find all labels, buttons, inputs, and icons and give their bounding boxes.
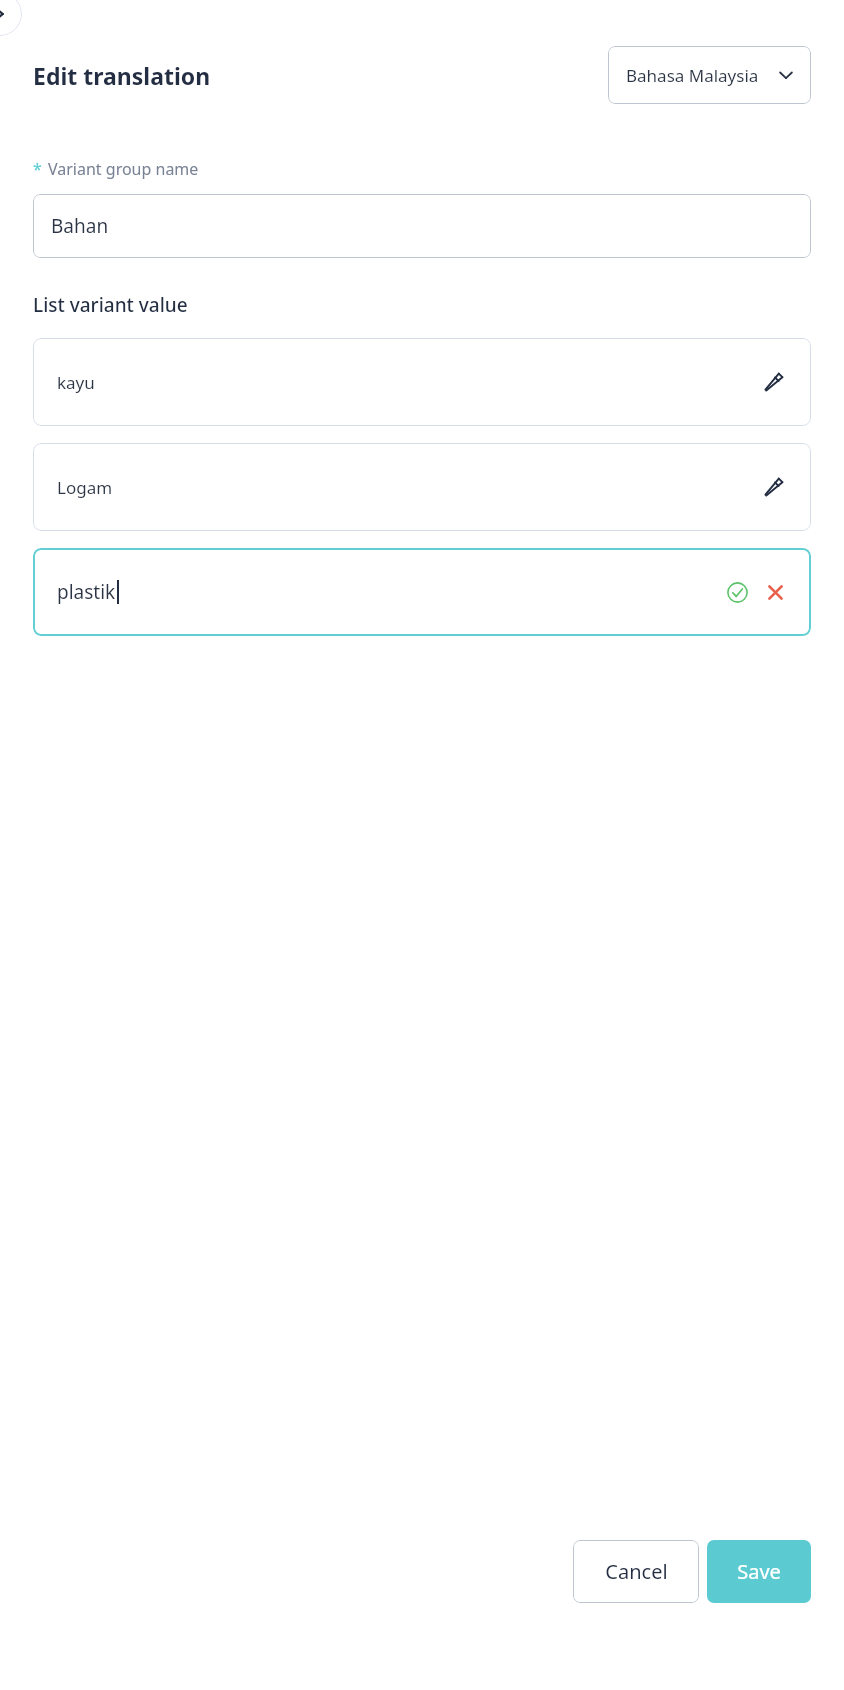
button[interactable]: kayu	[33, 338, 811, 426]
button[interactable]: Edit kayu	[759, 367, 789, 397]
staticText: *	[33, 158, 42, 180]
staticText: Bahasa Malaysia	[626, 64, 759, 87]
button[interactable]: Bahasa Malaysia	[608, 46, 811, 104]
staticText: Logam	[57, 476, 113, 499]
staticText: List variant value	[33, 292, 188, 318]
button[interactable]: Bahan	[33, 194, 811, 258]
staticText: Variant group name	[48, 158, 199, 180]
staticText: plastik	[57, 579, 116, 605]
staticText: Edit translation	[33, 60, 211, 91]
button[interactable]: plastik	[33, 548, 811, 636]
button[interactable]: Confirm	[723, 578, 751, 606]
staticText: Cancel	[605, 1558, 668, 1585]
button[interactable]: Cancel	[573, 1540, 699, 1603]
staticText: Save	[737, 1558, 781, 1585]
button[interactable]: Logam	[33, 443, 811, 531]
button[interactable]: Edit Logam	[759, 472, 789, 502]
staticText: kayu	[57, 371, 95, 394]
staticText: Bahan	[51, 213, 109, 239]
button[interactable]: Remove	[761, 578, 789, 606]
button[interactable]: Save	[707, 1540, 811, 1603]
button[interactable]: Collapse panel	[0, 0, 22, 36]
